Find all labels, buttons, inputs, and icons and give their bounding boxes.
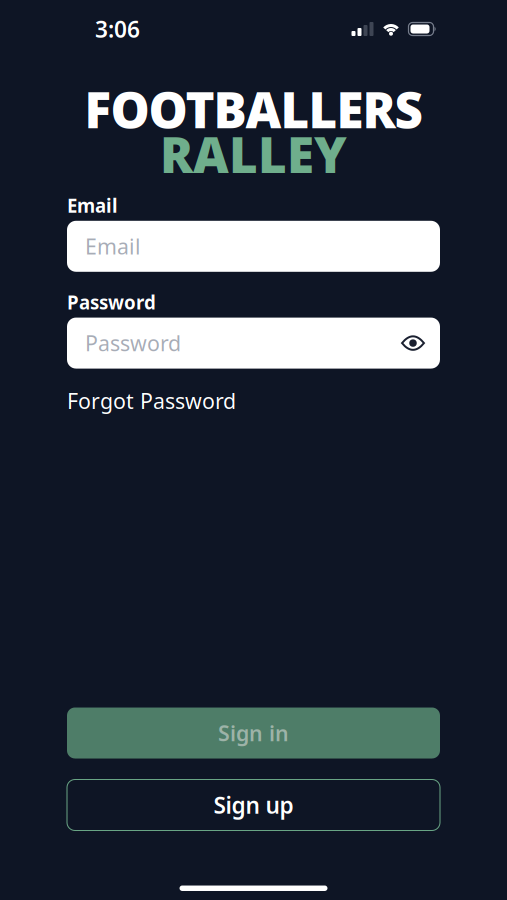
staticText: FOOTBALLERS bbox=[84, 76, 422, 142]
staticText: 3:06 bbox=[95, 14, 140, 44]
button[interactable]: Email bbox=[67, 221, 440, 272]
staticText: Email bbox=[67, 193, 118, 218]
staticText: RALLEY bbox=[160, 121, 347, 187]
staticText: Sign in bbox=[218, 719, 289, 747]
staticText: Sign up bbox=[213, 790, 293, 820]
button[interactable]: Password bbox=[67, 318, 440, 369]
button[interactable]: Show password bbox=[401, 335, 425, 351]
button[interactable]: Sign up bbox=[67, 779, 440, 830]
staticText: Password bbox=[67, 290, 156, 315]
staticText: Password bbox=[85, 329, 181, 357]
staticText: Forgot Password bbox=[67, 387, 236, 415]
button[interactable]: Forgot Password bbox=[67, 387, 236, 415]
button[interactable]: Sign in bbox=[67, 707, 440, 758]
staticText: Email bbox=[85, 232, 141, 260]
